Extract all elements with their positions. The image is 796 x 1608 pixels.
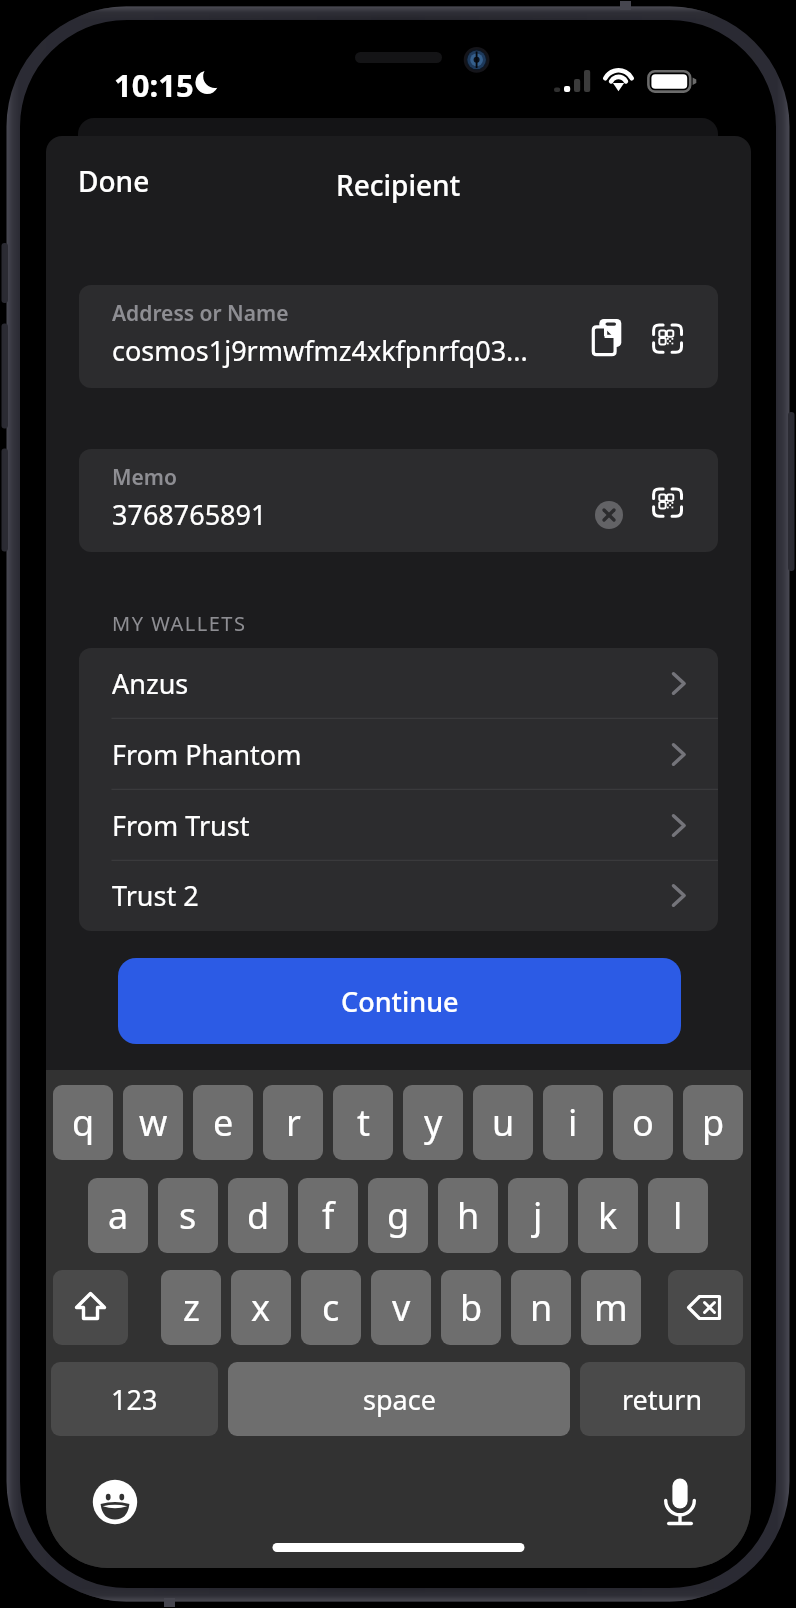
staticText: Address or Name	[112, 299, 289, 328]
button[interactable]: From Trust	[79, 790, 718, 861]
staticText: t	[357, 1098, 370, 1147]
button[interactable]: m	[581, 1270, 641, 1345]
staticText: z	[183, 1283, 200, 1332]
button[interactable]: v	[371, 1270, 431, 1345]
button[interactable]: q	[53, 1085, 113, 1160]
button[interactable]: space	[228, 1362, 570, 1436]
staticText: j	[533, 1191, 543, 1240]
staticText: e	[213, 1098, 234, 1147]
button[interactable]: Copy	[588, 314, 628, 354]
button[interactable]: From Phantom	[79, 719, 718, 790]
staticText: Anzus	[112, 665, 189, 702]
button[interactable]: Scan QR code	[647, 314, 687, 354]
staticText: b	[460, 1283, 483, 1332]
staticText: h	[457, 1191, 480, 1240]
button[interactable]: b	[441, 1270, 501, 1345]
staticText: Trust 2	[112, 877, 199, 914]
button[interactable]: n	[511, 1270, 571, 1345]
staticText: From Phantom	[112, 736, 302, 773]
button[interactable]: Emoji keyboard	[81, 1468, 149, 1536]
button[interactable]: y	[403, 1085, 463, 1160]
button[interactable]: p	[683, 1085, 743, 1160]
staticText: From Trust	[112, 807, 250, 844]
button[interactable]: l	[648, 1178, 708, 1253]
button[interactable]: Anzus	[79, 648, 718, 719]
staticText: o	[632, 1098, 654, 1147]
staticText: m	[594, 1283, 628, 1332]
button[interactable]: 123	[51, 1362, 218, 1436]
staticText: f	[322, 1191, 335, 1240]
staticText: s	[179, 1191, 197, 1240]
staticText: return	[622, 1381, 703, 1418]
staticText: c	[322, 1283, 340, 1332]
staticText: n	[530, 1283, 553, 1332]
staticText: 10:15	[114, 64, 194, 106]
button[interactable]: Done	[64, 154, 164, 208]
staticText: cosmos1j9rmwfmz4xkfpnrfq03...	[112, 332, 528, 369]
staticText: Recipient	[336, 166, 461, 204]
staticText: i	[568, 1098, 578, 1147]
button[interactable]: x	[231, 1270, 291, 1345]
staticText: Memo	[112, 463, 177, 492]
button[interactable]: d	[228, 1178, 288, 1253]
staticText: d	[247, 1191, 270, 1240]
button[interactable]: Continue	[118, 958, 681, 1044]
button[interactable]: c	[301, 1270, 361, 1345]
staticText: 123	[111, 1381, 158, 1418]
staticText: y	[424, 1098, 443, 1147]
staticText: u	[492, 1098, 515, 1147]
staticText: a	[108, 1191, 129, 1240]
button[interactable]: j	[508, 1178, 568, 1253]
staticText: w	[139, 1098, 168, 1147]
staticText: k	[598, 1191, 618, 1240]
button[interactable]: w	[123, 1085, 183, 1160]
button[interactable]: e	[193, 1085, 253, 1160]
button[interactable]: Trust 2	[79, 860, 718, 931]
button[interactable]: h	[438, 1178, 498, 1253]
button[interactable]: t	[333, 1085, 393, 1160]
button[interactable]: return	[580, 1362, 745, 1436]
staticText: MY WALLETS	[112, 610, 247, 637]
staticText: x	[251, 1283, 271, 1332]
staticText: Continue	[341, 983, 459, 1020]
button[interactable]: o	[613, 1085, 673, 1160]
staticText: 3768765891	[112, 496, 267, 533]
button[interactable]: g	[368, 1178, 428, 1253]
button[interactable]: Shift	[53, 1270, 128, 1345]
button[interactable]: a	[88, 1178, 148, 1253]
button[interactable]: Backspace	[668, 1270, 743, 1345]
button[interactable]: Clear	[587, 493, 631, 537]
staticText: p	[702, 1098, 725, 1147]
button[interactable]: z	[161, 1270, 221, 1345]
button[interactable]: Dictation	[646, 1468, 714, 1536]
staticText: space	[363, 1381, 436, 1418]
button[interactable]: i	[543, 1085, 603, 1160]
button[interactable]: s	[158, 1178, 218, 1253]
staticText: v	[392, 1283, 411, 1332]
staticText: r	[286, 1098, 301, 1147]
button[interactable]: f	[298, 1178, 358, 1253]
button[interactable]: k	[578, 1178, 638, 1253]
button[interactable]: Memo	[79, 449, 718, 552]
staticText: Done	[78, 162, 150, 200]
button[interactable]: Scan QR code	[647, 478, 687, 518]
staticText: l	[673, 1191, 683, 1240]
button[interactable]: u	[473, 1085, 533, 1160]
button[interactable]: r	[263, 1085, 323, 1160]
button[interactable]: Address or Name	[79, 285, 718, 388]
staticText: g	[387, 1191, 410, 1240]
staticText: q	[72, 1098, 95, 1147]
